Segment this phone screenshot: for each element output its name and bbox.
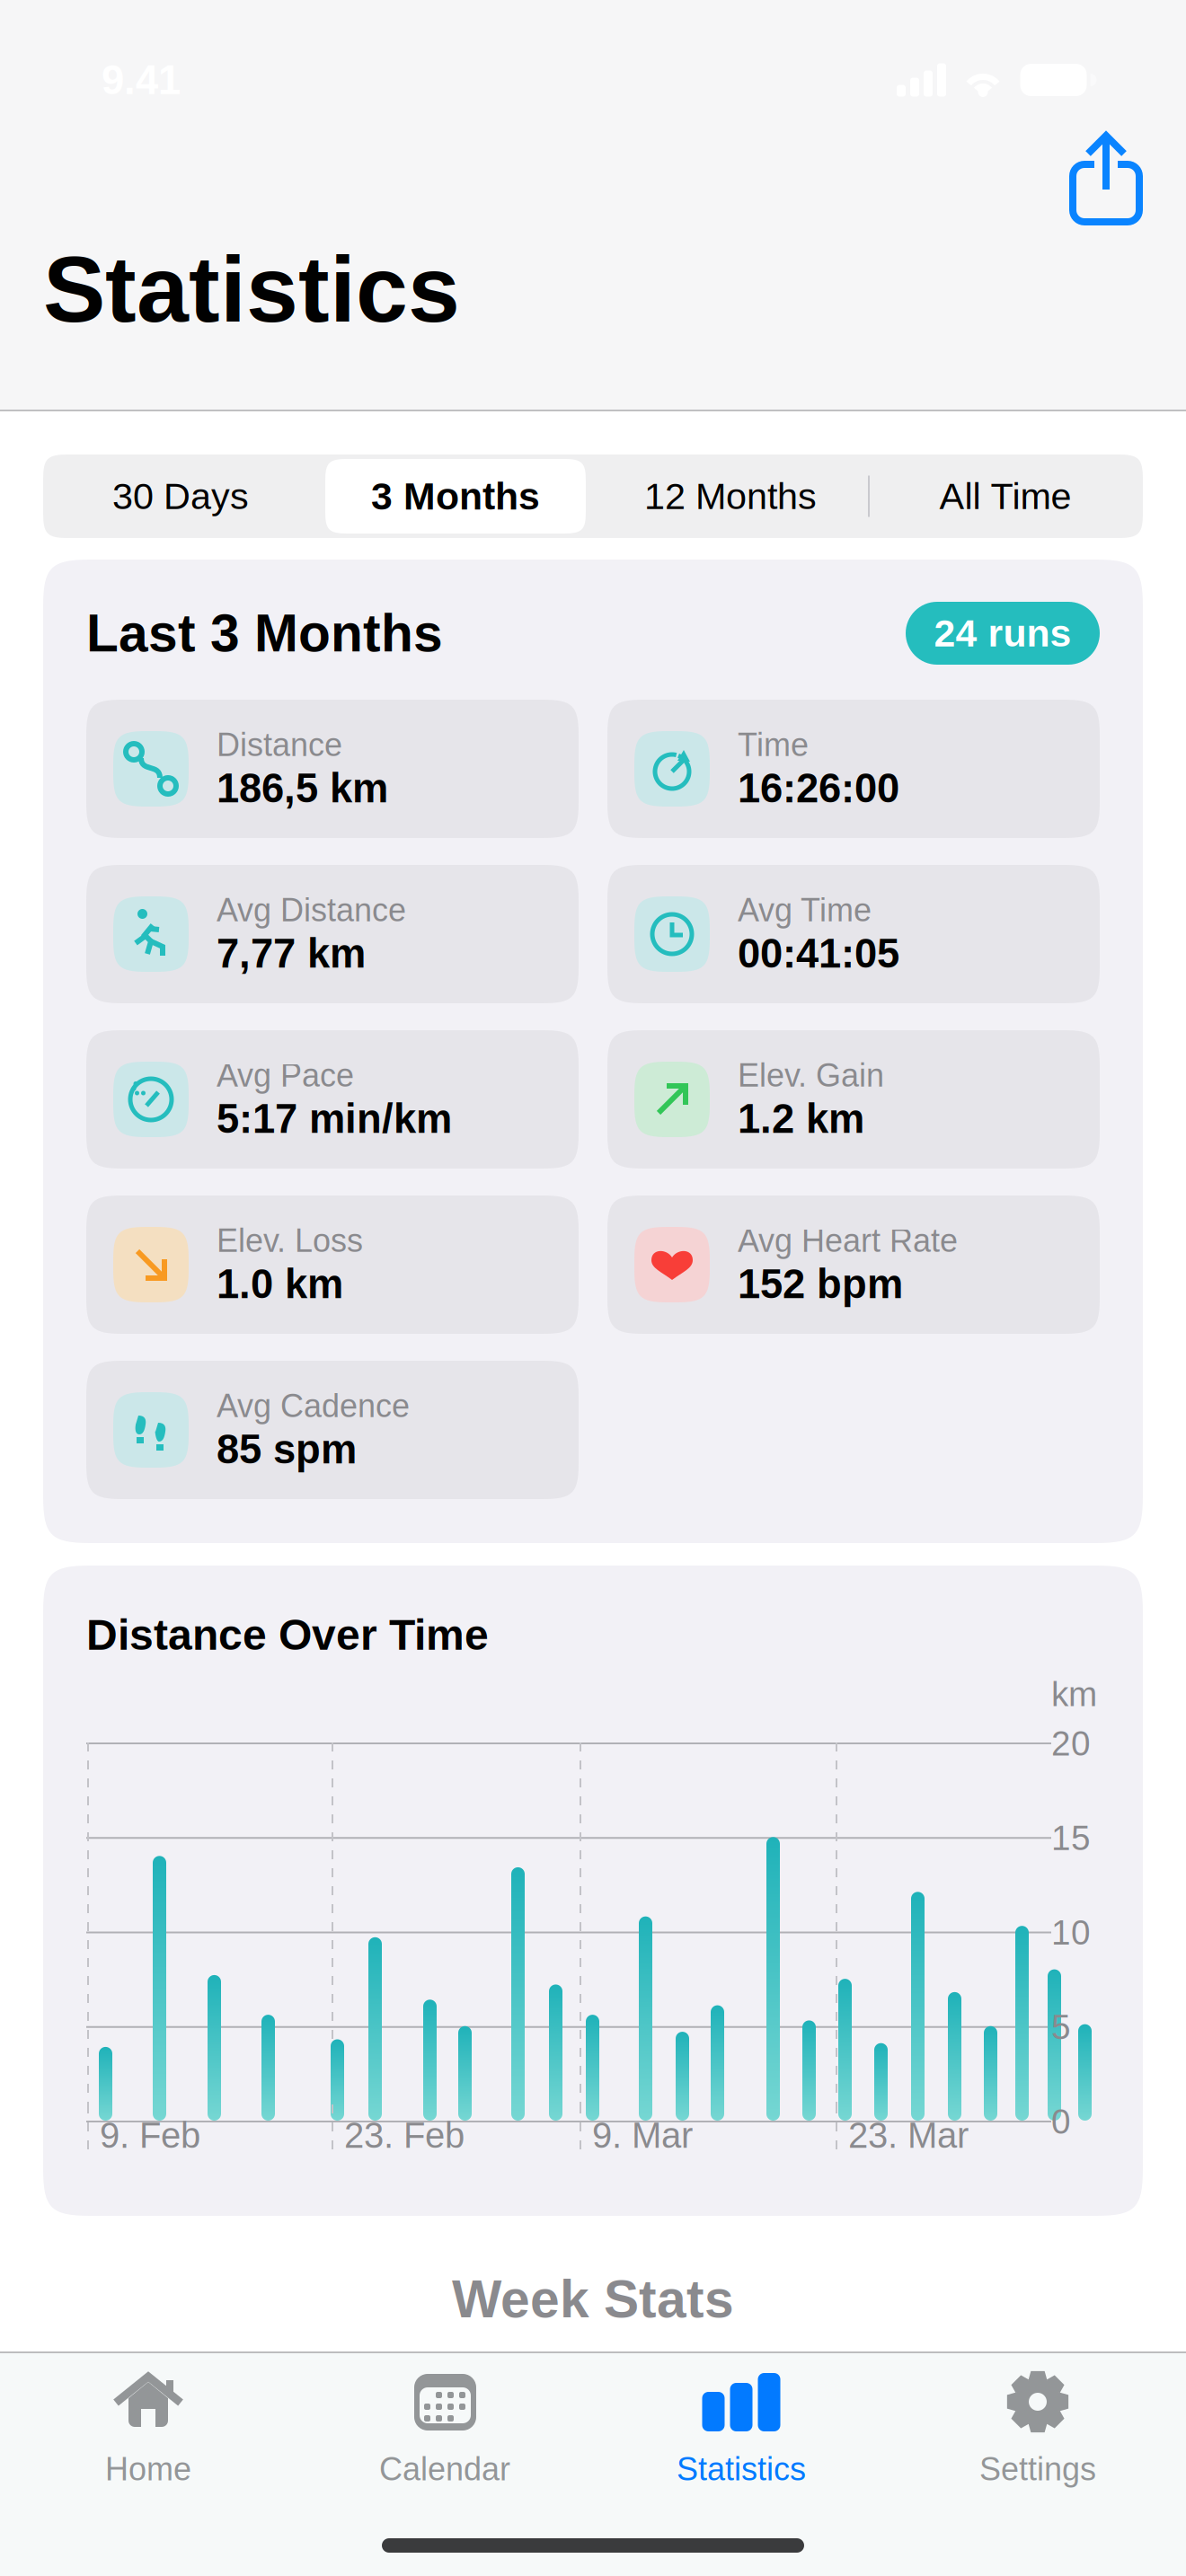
button[interactable]: 12 Months	[593, 454, 868, 538]
staticText: Avg Pace	[217, 1057, 354, 1093]
staticText: 85 spm	[217, 1427, 357, 1472]
staticText: 15	[1051, 1819, 1091, 1857]
button[interactable]: 30 Days	[43, 454, 318, 538]
button[interactable]: Home	[0, 2370, 296, 2516]
button[interactable]: All Time	[868, 454, 1143, 538]
staticText: 0	[1051, 2102, 1071, 2141]
staticText: 7,77 km	[217, 931, 366, 976]
staticText: Elev. Loss	[217, 1223, 363, 1259]
staticText: Home	[105, 2451, 191, 2487]
staticText: 5:17 min/km	[217, 1096, 452, 1142]
button[interactable]: Statistics	[593, 2370, 889, 2516]
button[interactable]: Share	[1058, 122, 1154, 234]
staticText: Week Stats	[452, 2270, 734, 2329]
staticText: 9.41	[102, 57, 181, 103]
button[interactable]: Settings	[889, 2370, 1186, 2516]
button[interactable]: Calendar	[296, 2370, 593, 2516]
staticText: 3 Months	[371, 475, 540, 518]
staticText: Distance Over Time	[86, 1611, 489, 1659]
staticText: Avg Cadence	[217, 1388, 410, 1424]
staticText: 9. Feb	[100, 2115, 200, 2155]
staticText: 20	[1051, 1724, 1091, 1763]
staticText: Time	[738, 727, 809, 763]
staticText: Statistics	[43, 237, 460, 341]
button[interactable]: 3 Months	[318, 454, 593, 538]
staticText: 1.0 km	[217, 1261, 343, 1307]
staticText: km	[1051, 1675, 1097, 1713]
staticText: Statistics	[677, 2451, 806, 2487]
staticText: Elev. Gain	[738, 1057, 884, 1093]
staticText: 16:26:00	[738, 766, 899, 811]
staticText: 1.2 km	[738, 1096, 864, 1142]
staticText: 186,5 km	[217, 766, 388, 811]
staticText: Avg Time	[738, 892, 872, 928]
staticText: 12 Months	[644, 476, 817, 517]
staticText: 24 runs	[934, 612, 1071, 655]
staticText: Avg Heart Rate	[738, 1223, 958, 1259]
staticText: Calendar	[379, 2451, 510, 2487]
staticText: 152 bpm	[738, 1261, 903, 1307]
staticText: 23. Feb	[344, 2115, 465, 2155]
staticText: All Time	[939, 476, 1071, 517]
staticText: Distance	[217, 727, 342, 763]
staticText: 23. Mar	[848, 2115, 969, 2155]
staticText: 9. Mar	[592, 2115, 693, 2155]
staticText: Settings	[979, 2451, 1096, 2487]
staticText: Last 3 Months	[86, 604, 443, 663]
staticText: Avg Distance	[217, 892, 406, 928]
staticText: 10	[1051, 1913, 1091, 1952]
staticText: 00:41:05	[738, 931, 899, 976]
staticText: 30 Days	[112, 476, 249, 517]
staticText: 5	[1051, 2008, 1071, 2046]
